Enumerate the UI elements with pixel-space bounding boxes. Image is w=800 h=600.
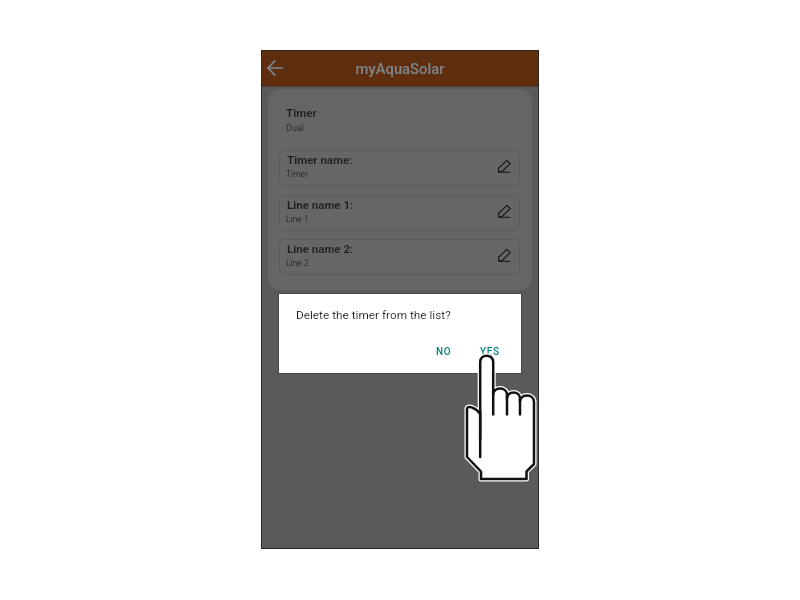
button[interactable]: YES bbox=[474, 343, 506, 361]
staticText: Line 2 bbox=[286, 258, 309, 268]
button[interactable]: NO bbox=[430, 343, 458, 361]
staticText: Timer bbox=[286, 106, 317, 120]
staticText: Delete the timer from the list? bbox=[296, 308, 451, 322]
staticText: Dual bbox=[286, 123, 304, 134]
button[interactable]: Edit bbox=[488, 239, 520, 271]
staticText: Line name 2: bbox=[287, 242, 354, 255]
button[interactable]: Line name 2: bbox=[279, 239, 520, 275]
button[interactable]: Edit bbox=[488, 195, 520, 227]
staticText: Line name 1: bbox=[287, 198, 354, 211]
button[interactable]: Edit bbox=[488, 150, 520, 182]
staticText: YES bbox=[480, 346, 500, 358]
staticText: Timer name: bbox=[287, 153, 353, 166]
button[interactable]: Back bbox=[261, 50, 289, 86]
button[interactable]: Timer name: bbox=[279, 150, 520, 186]
staticText: Line 1 bbox=[286, 214, 309, 224]
staticText: Timer bbox=[286, 169, 308, 179]
staticText: myAquaSolar bbox=[289, 60, 511, 77]
button[interactable]: Line name 1: bbox=[279, 195, 520, 231]
staticText: NO bbox=[436, 346, 452, 358]
